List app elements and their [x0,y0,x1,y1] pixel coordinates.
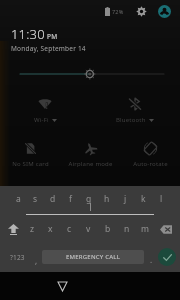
staticText: PM [47,32,58,41]
staticText: Wi-Fi [34,116,49,124]
button[interactable]: m [136,216,155,242]
button[interactable]: b [98,216,117,242]
button[interactable]: Comma [30,242,42,272]
staticText: Auto-rotate [133,160,168,168]
staticText: h [104,193,110,205]
staticText: d [50,193,56,205]
button[interactable]: k [134,186,152,212]
staticText: s [33,193,38,205]
button[interactable]: v [79,216,98,242]
button[interactable]: No SIM card [0,136,60,174]
button[interactable]: h [98,186,116,212]
button[interactable]: Airplane mode [60,136,120,174]
button[interactable]: j [116,186,134,212]
staticText: g [86,193,92,205]
staticText: ?123 [10,253,25,262]
button[interactable]: Shift [3,216,23,242]
staticText: x [48,223,53,235]
button[interactable]: Wi-Fi [0,90,90,130]
staticText: Airplane mode [68,160,113,168]
staticText: c [67,223,72,235]
button[interactable]: n [117,216,136,242]
staticText: 11:30 [11,25,45,43]
staticText: v [86,223,91,235]
button[interactable]: EMERGENCY CALL [42,250,144,264]
staticText: a [16,193,21,205]
staticText: k [141,193,146,205]
button[interactable]: s [27,186,44,212]
button[interactable]: Bluetooth [90,90,180,130]
button[interactable]: Auto-rotate [120,136,180,174]
button[interactable]: a [10,186,27,212]
staticText: No SIM card [12,160,49,168]
button[interactable]: Settings [133,3,149,19]
button[interactable]: Back [49,273,75,299]
button[interactable]: c [60,216,79,242]
button[interactable]: f [62,186,80,212]
button[interactable]: Battery 72 percent [103,7,126,16]
staticText: b [105,223,111,235]
staticText: , [35,255,38,266]
button[interactable]: d [44,186,62,212]
button[interactable]: Brightness [0,64,180,84]
staticText: z [30,223,35,235]
button[interactable]: z [23,216,41,242]
staticText: j [124,193,127,205]
button[interactable]: g [80,186,98,212]
button[interactable]: ?123 [4,242,30,272]
staticText: f [69,193,73,205]
staticText: EMERGENCY CALL [66,253,121,261]
staticText: 72% [112,8,124,15]
staticText: n [124,223,130,235]
button[interactable]: User profile [155,2,173,20]
button[interactable]: Enter [158,248,176,266]
button[interactable]: x [41,216,60,242]
staticText: l [160,193,163,205]
button[interactable]: Delete [155,216,177,242]
staticText: m [141,223,150,235]
staticText: . [150,254,153,265]
staticText: Bluetooth [116,116,146,124]
staticText: Monday, September 14 [11,44,86,53]
button[interactable]: l [152,186,170,212]
